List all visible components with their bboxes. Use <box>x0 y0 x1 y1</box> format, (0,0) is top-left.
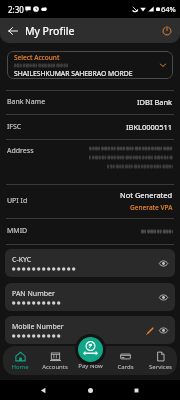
button[interactable]: Services <box>143 346 177 375</box>
button[interactable]: Select Account <box>7 51 173 79</box>
staticText: C-KYC <box>12 255 32 265</box>
button[interactable]: C-KYC <box>5 249 175 277</box>
staticText: Mobile Number <box>12 322 64 332</box>
staticText: My Profile <box>25 24 75 38</box>
staticText: MMID <box>7 226 28 236</box>
button[interactable]: Pay Now <box>78 337 103 362</box>
button[interactable]: Edit <box>143 324 156 337</box>
staticText: Pay Now <box>78 362 103 370</box>
staticText: PAN Number <box>12 289 55 299</box>
staticText: SHAILESHKUMAR SAHEBRAO MORDE <box>14 69 133 78</box>
staticText: 2:30 <box>8 4 24 15</box>
button[interactable]: Logout <box>158 22 176 40</box>
button[interactable]: Show <box>157 324 170 337</box>
button[interactable]: Mobile Number <box>5 316 175 344</box>
staticText: UPI Id <box>7 196 28 206</box>
button[interactable]: Accounts <box>38 346 72 375</box>
staticText: IBKL0000511 <box>126 122 173 132</box>
button[interactable]: PAN Number <box>5 283 175 311</box>
button[interactable]: Cards <box>108 346 142 375</box>
button[interactable]: Show <box>157 257 170 270</box>
staticText: Generate VPA <box>130 203 173 212</box>
button[interactable]: Show <box>157 291 170 304</box>
staticText: Select Account <box>14 53 60 62</box>
staticText: Home <box>11 363 29 371</box>
staticText: IFSC <box>7 122 22 132</box>
button[interactable]: Home <box>3 346 37 375</box>
staticText: Bank Name <box>7 97 46 107</box>
staticText: Accounts <box>42 363 68 371</box>
staticText: 64% <box>161 4 176 14</box>
button[interactable]: Back <box>4 22 22 40</box>
staticText: Not Generated <box>120 190 173 200</box>
staticText: Cards <box>117 363 134 371</box>
staticText: Services <box>149 363 172 371</box>
staticText: IDBI Bank <box>137 97 173 107</box>
staticText: Address <box>7 146 34 156</box>
button[interactable]: Generate VPA <box>130 203 173 212</box>
